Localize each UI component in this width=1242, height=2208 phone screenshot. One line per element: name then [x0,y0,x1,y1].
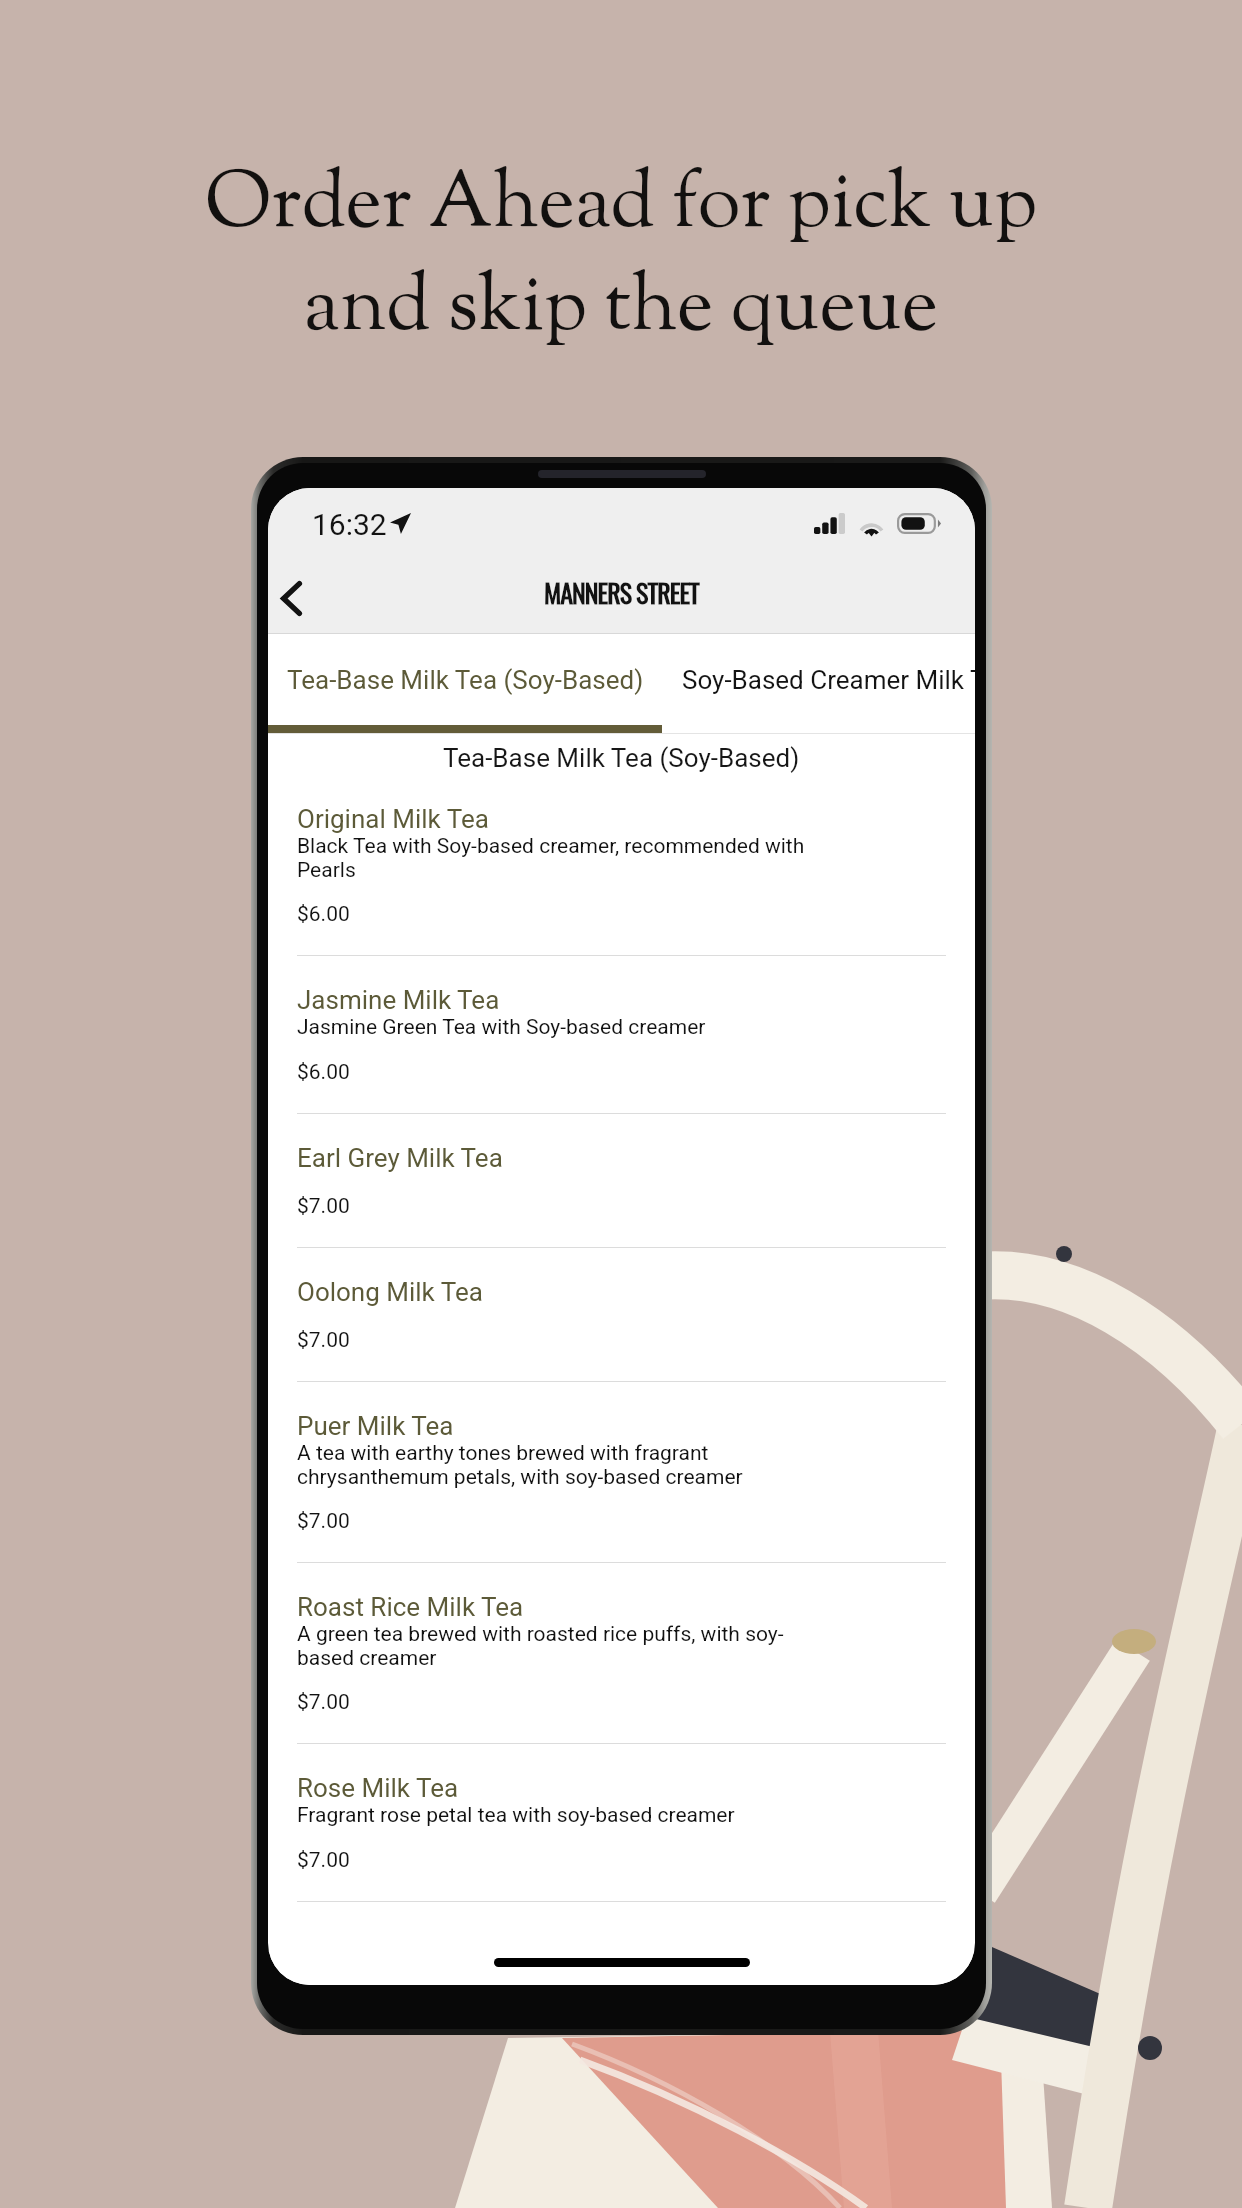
button[interactable]: Earl Grey Milk Tea [268,1114,975,1248]
staticText: Roast Rice Milk Tea [297,1592,524,1622]
staticText: Tea-Base Milk Tea (Soy-Based) [443,743,800,773]
staticText: $6.00 [297,1060,350,1085]
staticText: Jasmine Milk Tea [297,985,500,1015]
button[interactable]: Rose Milk Tea [268,1744,975,1902]
staticText: Soy-Based Creamer Milk Tea [682,665,975,695]
staticText: MANNERS STREET [544,573,699,612]
button[interactable]: Puer Milk Tea [268,1382,975,1563]
staticText: $7.00 [297,1848,350,1873]
staticText: Order Ahead for pick up and skip the que… [204,150,1038,367]
staticText: $7.00 [297,1509,350,1534]
staticText: $7.00 [297,1328,350,1353]
staticText: A tea with earthy tones brewed with frag… [297,1441,827,1489]
button[interactable]: Original Milk Tea [268,775,975,956]
button[interactable]: Back [268,545,332,633]
staticText: $7.00 [297,1194,350,1219]
staticText: Earl Grey Milk Tea [297,1143,503,1173]
staticText: $7.00 [297,1690,350,1715]
staticText: Oolong Milk Tea [297,1277,483,1307]
button[interactable]: Jasmine Milk Tea [268,956,975,1114]
button[interactable]: Roast Rice Milk Tea [268,1563,975,1744]
staticText: Jasmine Green Tea with Soy-based creamer [297,1015,827,1040]
button[interactable]: Tea-Base Milk Tea (Soy-Based) [268,634,662,734]
button[interactable]: Soy-Based Creamer Milk Tea [662,634,975,734]
staticText: Fragrant rose petal tea with soy-based c… [297,1803,827,1828]
staticText: A green tea brewed with roasted rice puf… [297,1622,827,1670]
button[interactable]: Oolong Milk Tea [268,1248,975,1382]
staticText: Puer Milk Tea [297,1411,454,1441]
staticText: 16:32 [312,507,387,542]
staticText: Black Tea with Soy-based creamer, recomm… [297,834,827,882]
staticText: Original Milk Tea [297,804,489,834]
staticText: Tea-Base Milk Tea (Soy-Based) [287,665,644,695]
staticText: $6.00 [297,902,350,927]
staticText: Rose Milk Tea [297,1773,459,1803]
